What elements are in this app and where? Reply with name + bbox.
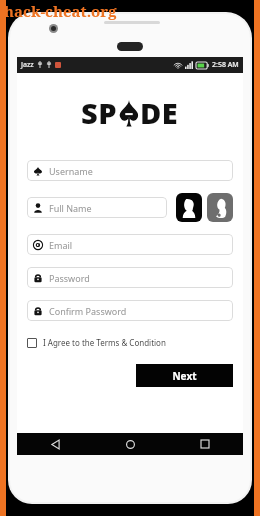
button[interactable]: Email: [27, 234, 233, 255]
button[interactable]: Select male: [176, 193, 202, 222]
staticText: Confirm Password: [49, 305, 127, 317]
button[interactable]: Confirm Password: [27, 300, 233, 321]
staticText: Username: [49, 165, 93, 177]
button[interactable]: Back: [47, 436, 63, 452]
staticText: SP: [81, 93, 118, 132]
staticText: DE: [140, 93, 179, 132]
button[interactable]: Username: [27, 160, 233, 181]
button[interactable]: Full Name: [27, 197, 167, 218]
button[interactable]: Next: [136, 364, 233, 387]
staticText: 2:58 AM: [212, 60, 239, 70]
button[interactable]: Recent apps: [197, 436, 213, 452]
button[interactable]: I Agree to the Terms & Condition: [27, 335, 166, 350]
staticText: Password: [49, 272, 90, 284]
staticText: hack-cheat.org: [4, 1, 117, 21]
button[interactable]: Password: [27, 267, 233, 288]
staticText: Full Name: [49, 202, 92, 214]
staticText: I Agree to the Terms & Condition: [43, 337, 166, 348]
button[interactable]: Select female: [207, 193, 233, 222]
staticText: Next: [172, 369, 197, 383]
staticText: Jazz: [21, 60, 34, 70]
button[interactable]: Home: [122, 436, 138, 452]
staticText: Email: [49, 239, 73, 251]
